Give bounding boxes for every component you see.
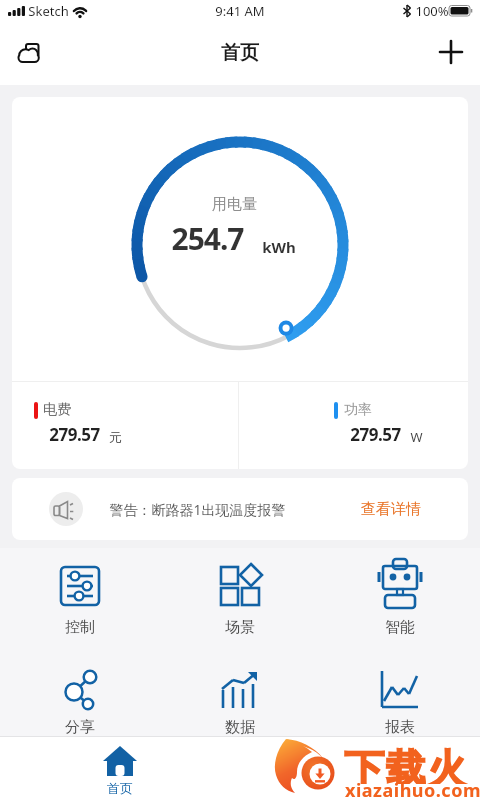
button[interactable]: 电费 [12, 382, 238, 469]
staticText: 数据 [225, 718, 255, 737]
staticText: 279.57 [350, 423, 401, 446]
staticText: W [410, 428, 423, 446]
staticText: kWh [262, 237, 296, 257]
staticText: Sketch [28, 2, 69, 20]
button[interactable]: 场景 [160, 548, 320, 645]
button[interactable]: 智能 [320, 548, 480, 645]
staticText: xiazaihuo.com [345, 778, 480, 800]
button[interactable] [431, 32, 471, 72]
staticText: 功率 [344, 401, 372, 419]
button[interactable]: 首页 [80, 737, 160, 800]
button[interactable]: 报表 [320, 645, 480, 742]
staticText: 元 [109, 429, 122, 445]
button[interactable]: 数据 [160, 645, 320, 742]
staticText: 首页 [221, 41, 259, 65]
button[interactable] [10, 30, 50, 70]
button[interactable]: 控制 [0, 548, 160, 645]
button[interactable]: 功率 [238, 382, 468, 469]
staticText: 100% [415, 2, 449, 20]
button[interactable]: 警告：断路器1出现温度报警 [12, 478, 468, 540]
staticText: 控制 [65, 618, 95, 637]
staticText: 智能 [385, 618, 415, 637]
staticText: 场景 [225, 618, 255, 637]
staticText: 报表 [385, 718, 415, 737]
staticText: 查看详情 [361, 500, 421, 519]
staticText: 254.7 [171, 218, 244, 258]
staticText: 下载火 [344, 744, 469, 784]
button[interactable]: 查看详情 [353, 489, 429, 529]
staticText: 279.57 [49, 423, 100, 446]
staticText: 首页 [107, 780, 133, 796]
staticText: 警告：断路器1出现温度报警 [109, 500, 286, 519]
staticText: 9:41 AM [215, 2, 265, 20]
staticText: 用电量 [212, 195, 257, 214]
staticText: 分享 [65, 718, 95, 737]
staticText: 电费 [43, 401, 71, 419]
button[interactable]: 分享 [0, 645, 160, 742]
